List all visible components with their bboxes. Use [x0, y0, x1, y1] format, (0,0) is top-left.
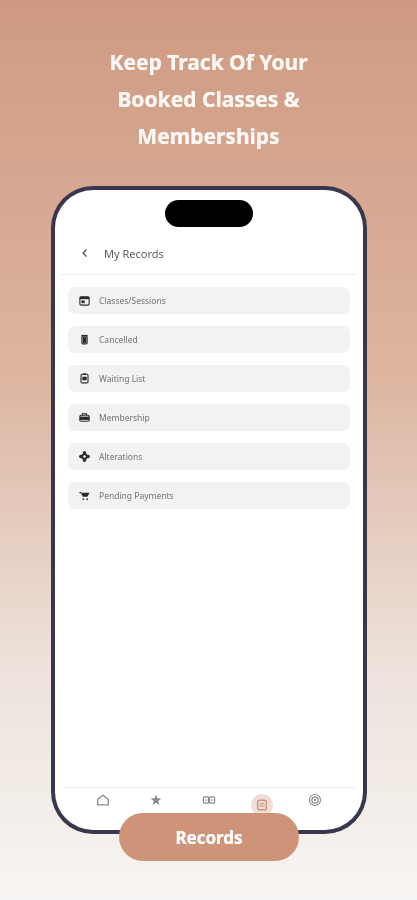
staticText: My Records — [104, 246, 164, 261]
button[interactable]: Schedule — [182, 794, 235, 824]
button[interactable]: Home — [77, 794, 129, 824]
button[interactable]: Cancelled — [68, 326, 350, 353]
staticText: Pending Payments — [99, 490, 174, 502]
button[interactable]: Waiting List — [68, 365, 350, 392]
staticText: Cancelled — [99, 334, 138, 346]
button[interactable]: Pending Payments — [68, 482, 350, 509]
staticText: Classes/Sessions — [99, 295, 166, 307]
button[interactable]: Favourites — [129, 794, 182, 824]
button[interactable]: Records — [235, 794, 288, 824]
staticText: Membership — [99, 412, 150, 424]
staticText: Alterations — [99, 451, 143, 463]
staticText: Keep Track Of Your — [109, 48, 308, 77]
staticText: Waiting List — [99, 373, 146, 385]
staticText: Memberships — [137, 122, 280, 151]
staticText: Records — [175, 826, 243, 849]
button[interactable]: Classes/Sessions — [68, 287, 350, 314]
button[interactable]: Alterations — [68, 443, 350, 470]
staticText: Booked Classes & — [117, 85, 300, 114]
button[interactable]: Records — [119, 813, 299, 861]
button[interactable]: Back — [75, 243, 95, 263]
button[interactable]: Membership — [68, 404, 350, 431]
button[interactable]: Settings — [288, 794, 341, 824]
